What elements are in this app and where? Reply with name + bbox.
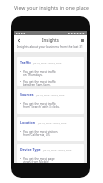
button[interactable]: Traffic bbox=[17, 57, 84, 86]
button[interactable]: Menu bbox=[77, 35, 87, 45]
staticText: You get the most visitors from Californi… bbox=[23, 130, 60, 137]
staticText: Sources bbox=[20, 92, 34, 97]
staticText: JUL 10, 2018 - AUG 9, 2018 bbox=[43, 149, 72, 152]
staticText: You get the most traffic from 'Search' w… bbox=[23, 102, 60, 109]
staticText: • bbox=[20, 102, 22, 106]
staticText: You get the most page views from Mobile … bbox=[23, 157, 60, 163]
staticText: You get the most traffic between 5pm-6pm… bbox=[23, 80, 60, 86]
staticText: • bbox=[20, 80, 22, 84]
staticText: Device Type bbox=[20, 147, 41, 152]
staticText: You get the most traffic on Thursdays. bbox=[23, 70, 60, 77]
staticText: JUL 10, 2018 - AUG 9, 2018 bbox=[33, 62, 62, 65]
button[interactable]: Location bbox=[17, 117, 84, 141]
staticText: Insights about your business from the la… bbox=[17, 45, 85, 49]
staticText: • bbox=[20, 157, 22, 161]
staticText: JUL 10, 2018 - AUG 9, 2018 bbox=[38, 122, 67, 125]
button[interactable]: Sources bbox=[17, 89, 84, 114]
button[interactable]: Device Type bbox=[17, 144, 84, 163]
staticText: Insights bbox=[42, 37, 59, 43]
staticText: Location bbox=[20, 120, 36, 125]
staticText: JUL 10, 2018 - AUG 9, 2018 bbox=[36, 94, 65, 97]
button[interactable]: Back bbox=[14, 35, 24, 45]
staticText: • bbox=[20, 70, 22, 74]
staticText: View your insights in one place bbox=[0, 4, 103, 11]
staticText: Traffic bbox=[20, 60, 31, 65]
staticText: • bbox=[20, 130, 22, 134]
